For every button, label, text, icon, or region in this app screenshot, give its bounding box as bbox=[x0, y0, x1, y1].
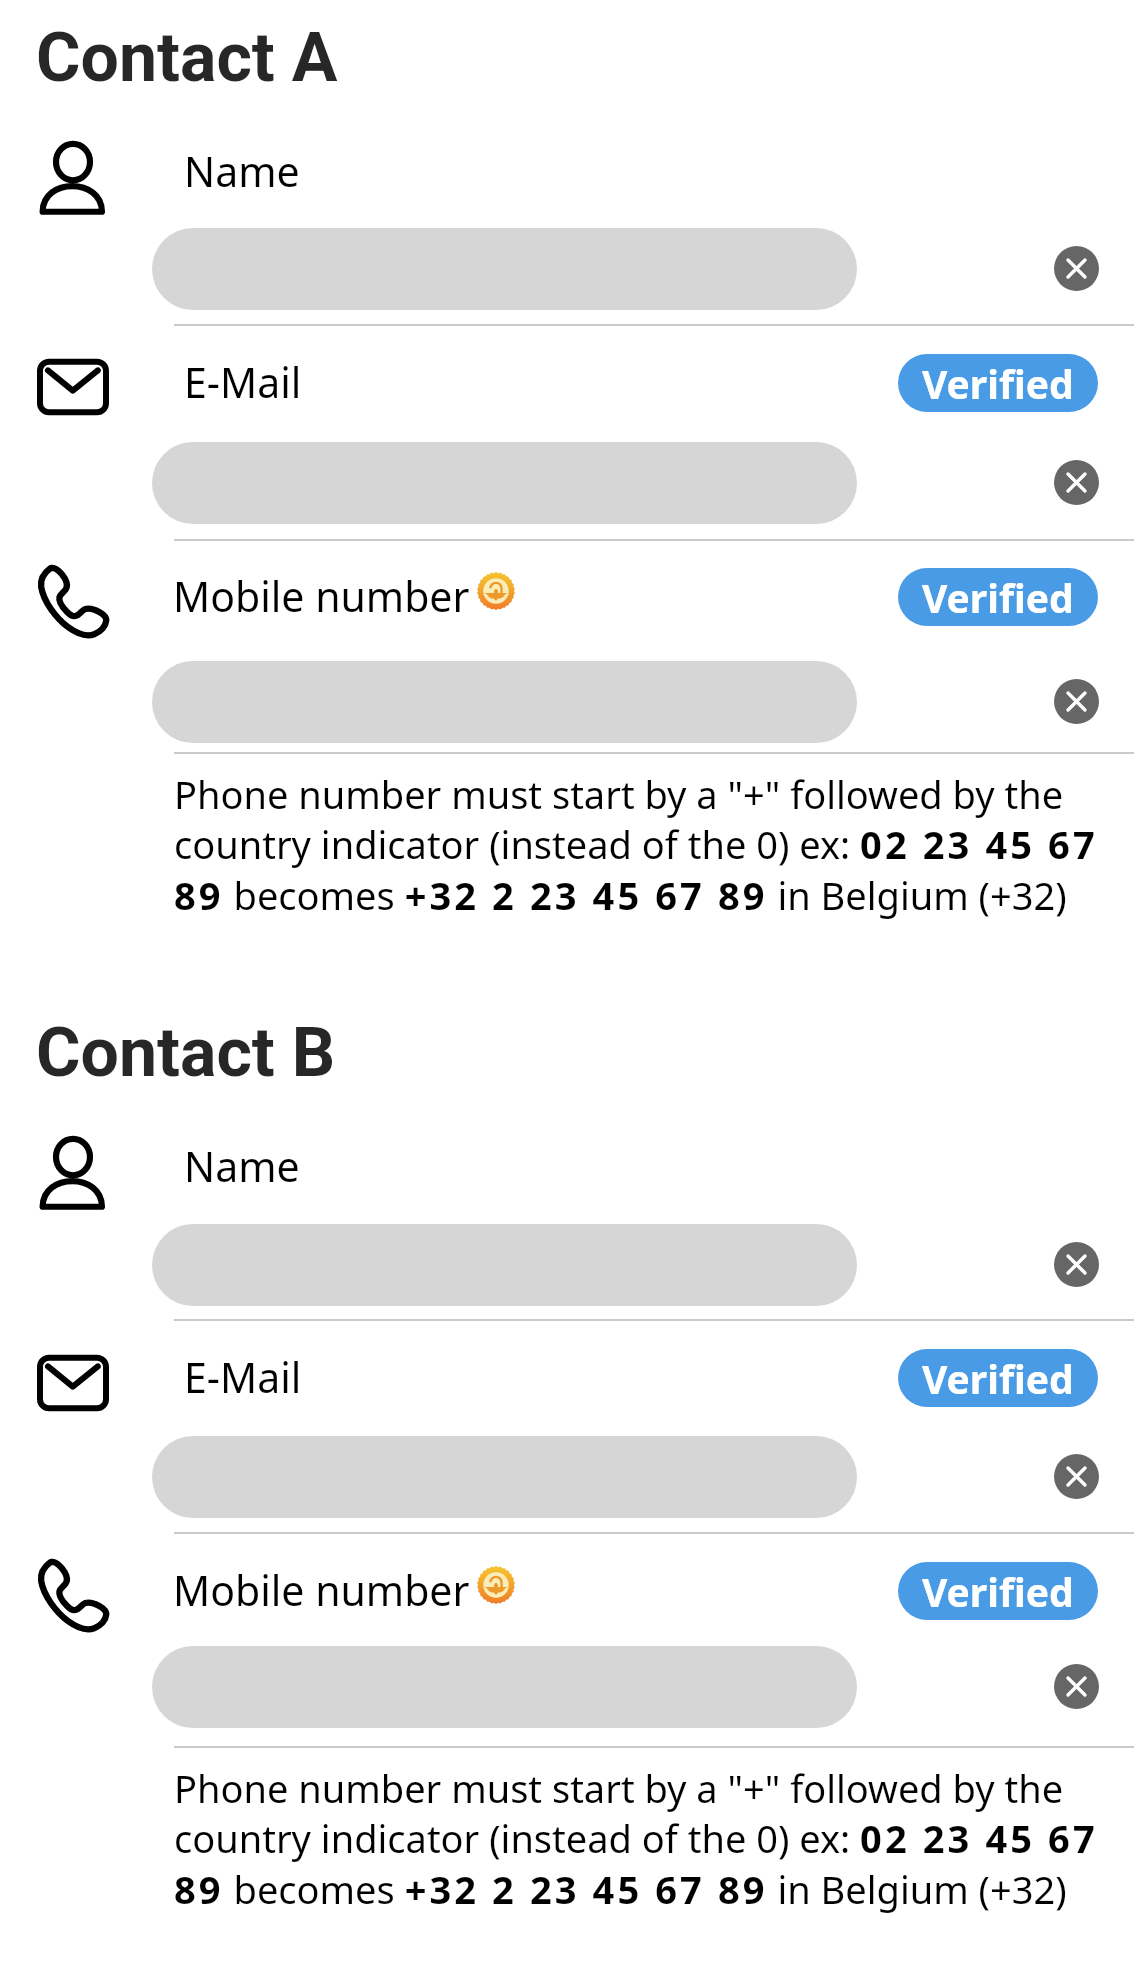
staticText: Mobile number bbox=[173, 568, 470, 624]
button[interactable] bbox=[152, 228, 857, 310]
button[interactable]: Clear bbox=[1054, 1454, 1099, 1499]
staticText: Name bbox=[184, 143, 300, 199]
button[interactable]: Name bbox=[37, 1138, 109, 1210]
staticText: Mobile number bbox=[173, 1562, 470, 1618]
button[interactable]: Clear bbox=[1054, 460, 1099, 505]
button[interactable]: Clear bbox=[1054, 1242, 1099, 1287]
staticText: Verified bbox=[922, 357, 1074, 410]
staticText: Contact A bbox=[36, 18, 338, 98]
button[interactable] bbox=[152, 1646, 857, 1728]
staticText: Verified bbox=[922, 1565, 1074, 1618]
button[interactable]: E-Mail bbox=[37, 351, 109, 423]
staticText: Name bbox=[184, 1138, 300, 1194]
staticText: E-Mail bbox=[184, 354, 302, 410]
button[interactable]: E-Mail bbox=[37, 1347, 109, 1419]
staticText: Phone number must start by a "+" followe… bbox=[174, 768, 1102, 921]
button[interactable]: Clear bbox=[1054, 679, 1099, 724]
button[interactable]: Mobile number bbox=[37, 1559, 109, 1631]
button[interactable] bbox=[152, 1436, 857, 1518]
button[interactable]: Verified bbox=[898, 568, 1098, 626]
button[interactable]: Clear bbox=[1054, 1664, 1099, 1709]
button[interactable] bbox=[152, 442, 857, 524]
button[interactable] bbox=[152, 661, 857, 743]
button[interactable] bbox=[152, 1224, 857, 1306]
button[interactable]: Clear bbox=[1054, 246, 1099, 291]
button[interactable]: Verified bbox=[898, 1349, 1098, 1407]
button[interactable]: Verified bbox=[898, 354, 1098, 412]
staticText: Verified bbox=[922, 1352, 1074, 1405]
button[interactable]: Verified bbox=[898, 1562, 1098, 1620]
staticText: Phone number must start by a "+" followe… bbox=[174, 1762, 1102, 1915]
button[interactable]: Mobile number bbox=[37, 565, 109, 637]
staticText: Verified bbox=[922, 571, 1074, 624]
button[interactable]: Name bbox=[37, 143, 109, 215]
staticText: E-Mail bbox=[184, 1349, 302, 1405]
staticText: Contact B bbox=[36, 1013, 336, 1093]
